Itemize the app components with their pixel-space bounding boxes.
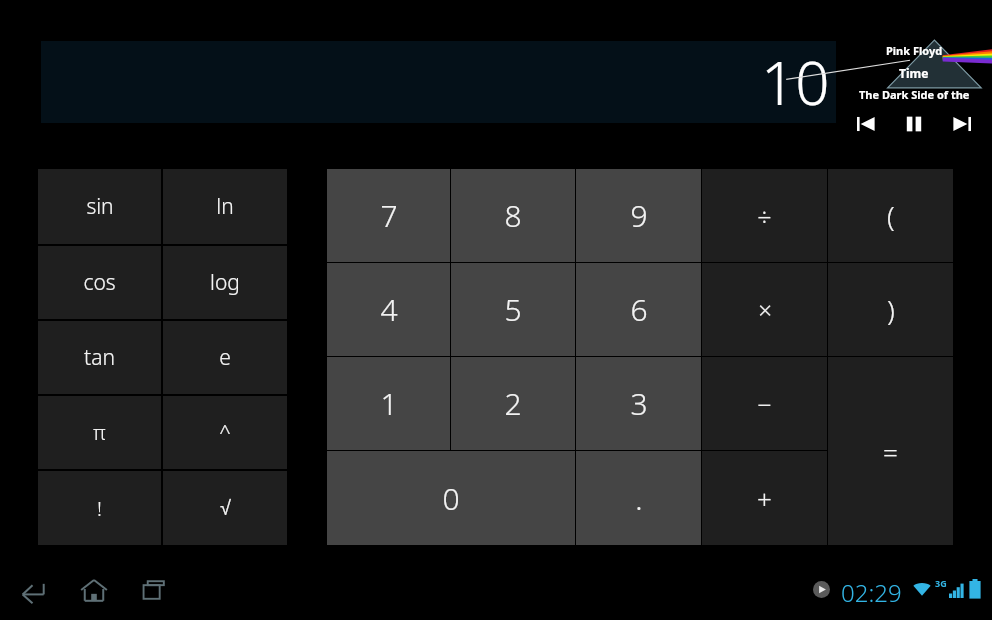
button[interactable]: ln xyxy=(163,169,287,244)
staticText: × xyxy=(758,293,772,326)
button[interactable]: ) xyxy=(828,263,953,356)
staticText: cos xyxy=(83,268,116,297)
button[interactable]: Pause xyxy=(894,110,934,138)
button[interactable]: cos xyxy=(38,246,161,319)
staticText: Pink Floyd xyxy=(886,43,943,58)
staticText: 9 xyxy=(630,195,648,236)
staticText: e xyxy=(219,343,231,372)
staticText: 1 xyxy=(380,383,398,424)
button[interactable]: 6 xyxy=(576,263,701,356)
button[interactable]: 0 xyxy=(327,451,575,545)
other: Battery xyxy=(968,579,982,599)
button[interactable]: 2 xyxy=(451,357,575,450)
staticText: 10 xyxy=(761,41,830,123)
staticText: √ xyxy=(220,497,231,519)
button[interactable]: 4 xyxy=(327,263,450,356)
staticText: = xyxy=(883,434,898,469)
button[interactable]: tan xyxy=(38,321,161,394)
button[interactable]: ( xyxy=(828,169,953,262)
button[interactable]: ^ xyxy=(163,396,287,469)
staticText: ( xyxy=(887,197,895,235)
staticText: ÷ xyxy=(757,199,772,233)
staticText: 7 xyxy=(380,195,398,236)
button[interactable]: Home xyxy=(70,570,118,610)
button[interactable]: ! xyxy=(38,471,161,545)
button[interactable]: ÷ xyxy=(702,169,827,262)
button[interactable]: π xyxy=(38,396,161,469)
button[interactable]: − xyxy=(702,357,827,450)
button[interactable]: 9 xyxy=(576,169,701,262)
other: Wi-Fi xyxy=(912,580,932,598)
button[interactable]: . xyxy=(576,451,701,545)
staticText: Time xyxy=(899,65,929,81)
staticText: 0 xyxy=(442,478,460,519)
staticText: ! xyxy=(97,495,102,522)
button[interactable]: Recent apps xyxy=(131,570,179,610)
staticText: 02:29 xyxy=(841,576,902,609)
button[interactable]: × xyxy=(702,263,827,356)
button[interactable]: Next xyxy=(943,110,983,138)
staticText: ^ xyxy=(219,419,231,446)
staticText: ln xyxy=(216,192,234,221)
staticText: ) xyxy=(887,291,895,329)
button[interactable]: 7 xyxy=(327,169,450,262)
staticText: 2 xyxy=(504,383,522,424)
staticText: 8 xyxy=(504,195,522,236)
button[interactable]: 8 xyxy=(451,169,575,262)
staticText: 3G xyxy=(935,577,947,589)
staticText: 3 xyxy=(630,383,648,424)
staticText: The Dark Side of the xyxy=(859,87,970,102)
button[interactable]: Back xyxy=(8,570,56,610)
staticText: 6 xyxy=(630,289,648,330)
staticText: tan xyxy=(84,343,115,372)
button[interactable]: 10 xyxy=(41,41,836,123)
button[interactable]: 1 xyxy=(327,357,450,450)
staticText: π xyxy=(93,419,106,446)
button[interactable]: = xyxy=(828,357,953,545)
button[interactable]: Previous xyxy=(845,110,885,138)
button[interactable]: + xyxy=(702,451,827,545)
staticText: . xyxy=(635,478,643,519)
other: Mobile signal xyxy=(949,583,964,598)
button[interactable]: 5 xyxy=(451,263,575,356)
staticText: + xyxy=(757,481,772,516)
button[interactable]: Now playing xyxy=(811,579,831,599)
button[interactable]: log xyxy=(163,246,287,319)
staticText: 4 xyxy=(380,289,398,330)
button[interactable]: √ xyxy=(163,471,287,545)
button[interactable]: 3 xyxy=(576,357,701,450)
button[interactable]: sin xyxy=(38,169,161,244)
staticText: 5 xyxy=(504,289,522,330)
button[interactable]: e xyxy=(163,321,287,394)
staticText: − xyxy=(757,387,772,421)
staticText: sin xyxy=(86,192,114,221)
staticText: log xyxy=(210,268,240,297)
